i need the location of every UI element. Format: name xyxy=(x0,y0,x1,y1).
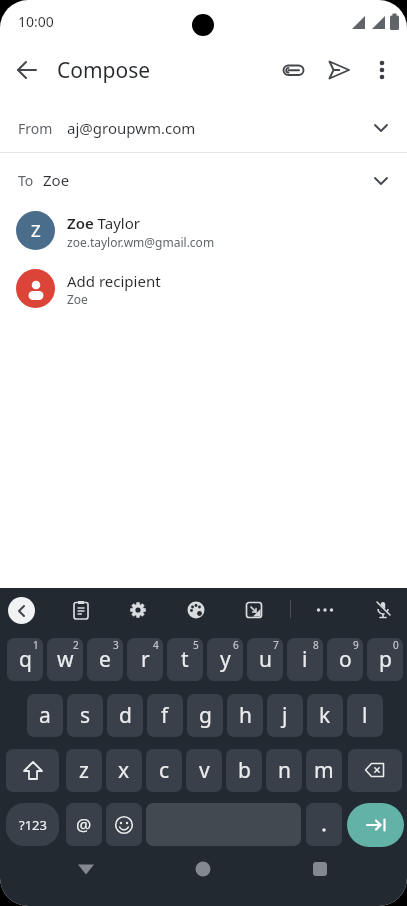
button[interactable] xyxy=(367,594,399,626)
staticText: d xyxy=(119,701,132,730)
button[interactable]: a xyxy=(27,694,63,737)
button[interactable]: f xyxy=(147,694,183,737)
button[interactable] xyxy=(8,597,35,624)
button[interactable] xyxy=(320,51,358,89)
button[interactable]: v xyxy=(186,749,222,792)
staticText: v xyxy=(199,756,210,785)
button[interactable]: c xyxy=(146,749,182,792)
staticText: Add recipient xyxy=(67,271,161,291)
button[interactable]: @ xyxy=(66,803,102,846)
staticText: zoe.taylor.wm@gmail.com xyxy=(67,234,215,250)
staticText: f xyxy=(161,701,169,730)
staticText: y xyxy=(220,645,231,674)
button[interactable] xyxy=(6,749,59,792)
button[interactable]: h xyxy=(227,694,263,737)
button[interactable]: t xyxy=(167,638,203,681)
staticText: o xyxy=(339,645,352,674)
staticText: 1 xyxy=(33,638,39,652)
staticText: @ xyxy=(76,813,92,836)
button[interactable] xyxy=(306,803,342,846)
button[interactable]: From xyxy=(0,104,407,152)
button[interactable]: i xyxy=(287,638,323,681)
button[interactable] xyxy=(275,51,313,89)
staticText: aj@groupwm.com xyxy=(67,118,196,138)
staticText: 8 xyxy=(313,638,319,652)
button[interactable] xyxy=(302,851,338,887)
button[interactable]: l xyxy=(347,694,383,737)
button[interactable] xyxy=(238,594,270,626)
staticText: t xyxy=(181,645,189,674)
staticText: p xyxy=(379,645,392,674)
button[interactable]: y xyxy=(207,638,243,681)
staticText: m xyxy=(314,756,334,785)
button[interactable]: To xyxy=(0,153,407,205)
staticText: h xyxy=(239,701,252,730)
staticText: 10:00 xyxy=(18,12,54,31)
button[interactable] xyxy=(185,851,221,887)
staticText: Compose xyxy=(57,56,151,85)
button[interactable] xyxy=(65,594,97,626)
button[interactable]: Z xyxy=(0,206,407,255)
button[interactable]: s xyxy=(67,694,103,737)
staticText: q xyxy=(19,645,32,674)
button[interactable]: m xyxy=(306,749,342,792)
staticText: Zoe Taylor xyxy=(67,213,140,233)
button[interactable]: q xyxy=(7,638,43,681)
button[interactable] xyxy=(68,851,104,887)
staticText: ?123 xyxy=(19,816,47,834)
staticText: 5 xyxy=(193,638,199,652)
button[interactable] xyxy=(363,51,401,89)
staticText: 0 xyxy=(393,638,399,652)
button[interactable]: z xyxy=(66,749,102,792)
button[interactable]: k xyxy=(307,694,343,737)
staticText: Zoe xyxy=(43,170,70,190)
button[interactable] xyxy=(348,749,402,792)
staticText: n xyxy=(278,756,291,785)
button[interactable] xyxy=(8,51,46,89)
staticText: k xyxy=(319,701,331,730)
staticText: 2 xyxy=(73,638,79,652)
button[interactable] xyxy=(347,803,404,847)
staticText: g xyxy=(199,701,212,730)
button[interactable]: o xyxy=(327,638,363,681)
staticText: 9 xyxy=(353,638,359,652)
staticText: x xyxy=(118,756,130,785)
staticText: u xyxy=(259,645,272,674)
staticText: c xyxy=(159,756,170,785)
staticText: To xyxy=(18,171,34,190)
button[interactable] xyxy=(106,803,142,846)
staticText: z xyxy=(79,756,89,785)
staticText: 6 xyxy=(233,638,239,652)
button[interactable]: ?123 xyxy=(6,803,59,846)
staticText: s xyxy=(80,701,91,730)
button[interactable]: j xyxy=(267,694,303,737)
button[interactable] xyxy=(309,594,341,626)
staticText: 4 xyxy=(153,638,159,652)
button[interactable]: x xyxy=(106,749,142,792)
button[interactable]: r xyxy=(127,638,163,681)
staticText: l xyxy=(362,701,368,730)
button[interactable]: d xyxy=(107,694,143,737)
button[interactable] xyxy=(122,594,154,626)
button[interactable]: n xyxy=(266,749,302,792)
button[interactable]: g xyxy=(187,694,223,737)
button[interactable]: u xyxy=(247,638,283,681)
staticText: Z xyxy=(31,219,41,242)
staticText: b xyxy=(238,756,251,785)
button[interactable]: w xyxy=(47,638,83,681)
staticText: i xyxy=(302,645,308,674)
button[interactable]: p xyxy=(367,638,403,681)
staticText: From xyxy=(18,119,53,138)
staticText: 7 xyxy=(273,638,279,652)
button[interactable] xyxy=(180,594,212,626)
staticText: j xyxy=(282,701,288,730)
button[interactable]: Add recipient xyxy=(0,263,407,313)
button[interactable]: e xyxy=(87,638,123,681)
staticText: r xyxy=(141,645,150,674)
staticText: w xyxy=(57,645,74,674)
staticText: a xyxy=(39,701,51,730)
staticText: e xyxy=(99,645,111,674)
staticText: 3 xyxy=(113,638,119,652)
button[interactable]: b xyxy=(226,749,262,792)
